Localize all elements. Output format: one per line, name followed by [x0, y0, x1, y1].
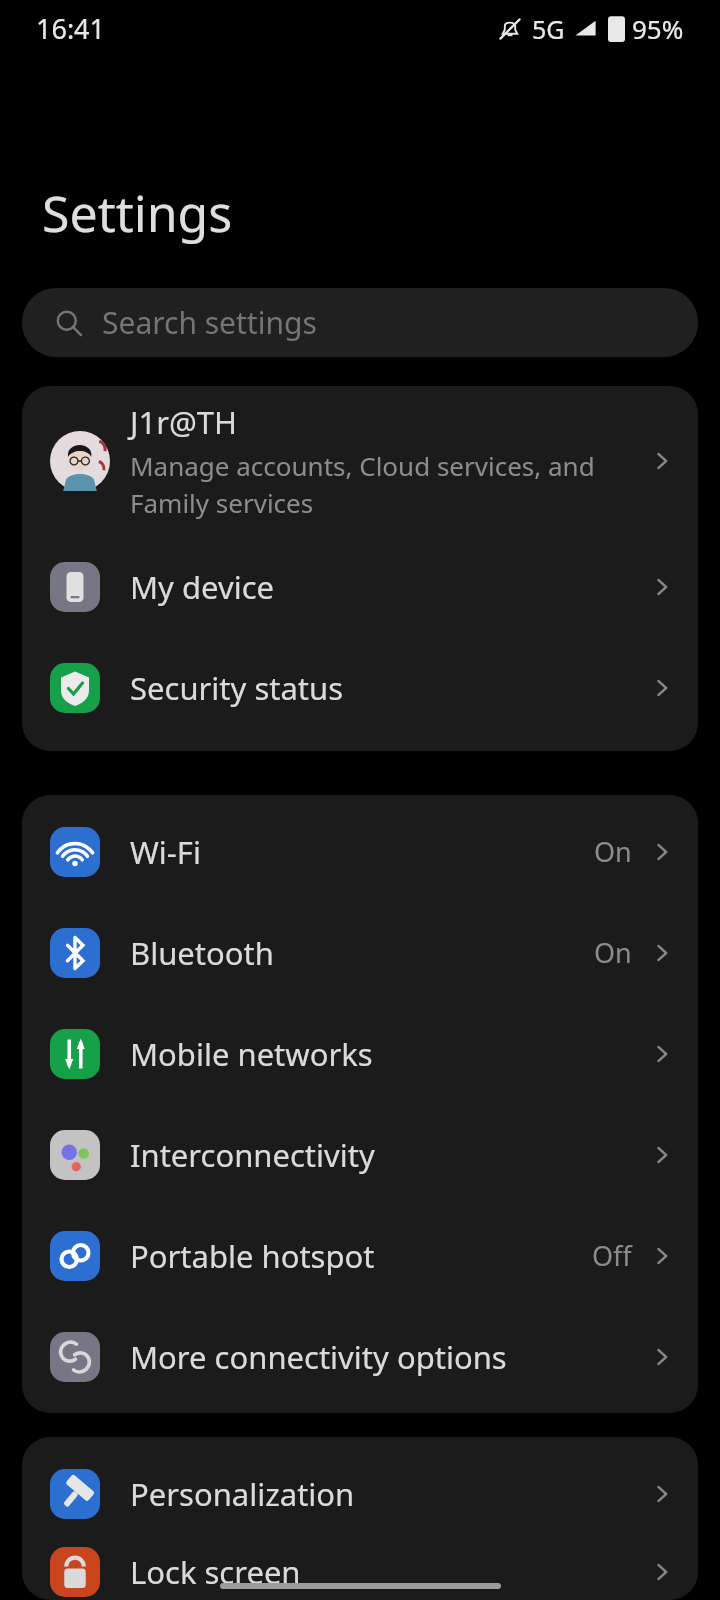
button[interactable]: Portable hotspot [22, 1205, 698, 1306]
button[interactable]: Lock screen [22, 1544, 698, 1600]
button[interactable]: Bluetooth [22, 902, 698, 1003]
staticText: 95% [632, 11, 684, 46]
staticText: Lock screen [130, 1551, 649, 1593]
staticText: On [594, 934, 632, 971]
button[interactable]: Personalization [22, 1443, 698, 1544]
button[interactable]: Wi-Fi [22, 801, 698, 902]
staticText: Portable hotspot [130, 1235, 592, 1277]
staticText: 5G [532, 12, 565, 46]
staticText: Off [592, 1237, 632, 1274]
staticText: Search settings [102, 302, 317, 343]
staticText: Manage accounts, Cloud services, and Fam… [130, 448, 595, 521]
button[interactable]: Mobile networks [22, 1003, 698, 1104]
staticText: Personalization [130, 1473, 649, 1515]
staticText: My device [130, 566, 649, 608]
button[interactable]: J1r@TH [22, 386, 698, 536]
staticText: More connectivity options [130, 1336, 649, 1378]
button[interactable]: Security status [22, 637, 698, 738]
staticText: J1r@TH [130, 401, 238, 443]
button[interactable]: Search settings [22, 288, 698, 357]
staticText: Mobile networks [130, 1033, 649, 1075]
button[interactable]: More connectivity options [22, 1306, 698, 1407]
staticText: Wi-Fi [130, 831, 594, 873]
staticText: Settings [42, 179, 233, 247]
staticText: Security status [130, 667, 649, 709]
staticText: Interconnectivity [130, 1134, 649, 1176]
staticText: 16:41 [36, 10, 106, 47]
staticText: Bluetooth [130, 932, 594, 974]
button[interactable]: Interconnectivity [22, 1104, 698, 1205]
button[interactable]: My device [22, 536, 698, 637]
staticText: On [594, 833, 632, 870]
